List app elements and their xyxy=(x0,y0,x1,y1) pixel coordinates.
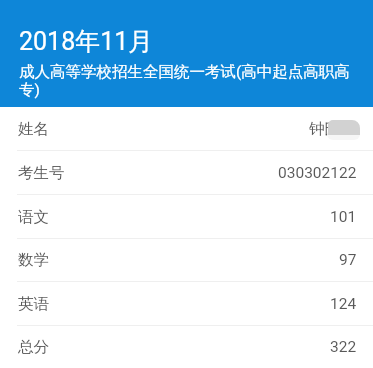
staticText: 总分 xyxy=(18,337,49,357)
staticText: 2018年11月 xyxy=(19,26,154,57)
staticText: 124 xyxy=(330,295,357,313)
staticText: 英语 xyxy=(18,294,49,314)
button[interactable]: 数学 xyxy=(0,239,373,282)
button[interactable]: 考生号 xyxy=(0,151,373,195)
button[interactable]: 总分 xyxy=(0,326,373,368)
staticText: 数学 xyxy=(18,250,49,270)
staticText: 成人高等学校招生全国统一考试(高中起点高职高专) xyxy=(19,62,359,99)
staticText: 030302122 xyxy=(278,164,357,182)
button[interactable]: 姓名 xyxy=(0,107,373,151)
button[interactable]: 语文 xyxy=(0,195,373,239)
staticText: 101 xyxy=(330,208,357,226)
staticText: 考生号 xyxy=(18,163,65,183)
staticText: 姓名 xyxy=(18,119,49,139)
button[interactable]: 2018年11月 xyxy=(0,0,373,107)
staticText: 322 xyxy=(330,338,357,356)
staticText: 语文 xyxy=(18,207,49,227)
staticText: 97 xyxy=(339,251,357,269)
button[interactable]: 英语 xyxy=(0,282,373,326)
staticText: 钟氏 xyxy=(309,119,340,139)
